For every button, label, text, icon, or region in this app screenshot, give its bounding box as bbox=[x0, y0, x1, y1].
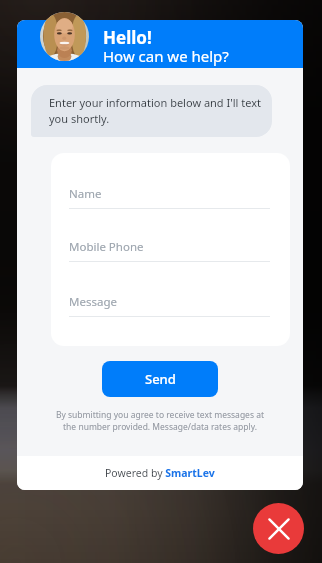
staticText: Message bbox=[69, 294, 117, 310]
staticText: Hello! bbox=[103, 26, 152, 49]
staticText: Enter your information below and I'll te… bbox=[49, 95, 264, 127]
staticText: By submitting you agree to receive text … bbox=[53, 409, 267, 433]
staticText: Name bbox=[69, 186, 102, 202]
button[interactable]: Close chat bbox=[253, 503, 304, 554]
button[interactable]: Send bbox=[102, 361, 218, 397]
staticText: How can we help? bbox=[103, 46, 229, 66]
staticText: Send bbox=[145, 370, 176, 388]
button[interactable]: Powered by SmartLev bbox=[105, 466, 215, 480]
staticText: Mobile Phone bbox=[69, 239, 144, 255]
button[interactable]: Agent avatar bbox=[40, 12, 89, 61]
